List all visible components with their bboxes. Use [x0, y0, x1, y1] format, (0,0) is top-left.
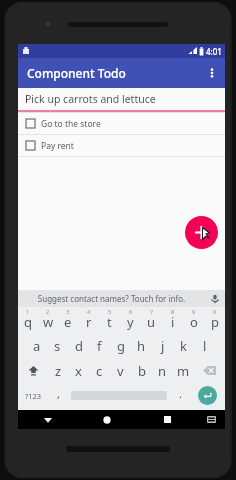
button[interactable]: 0	[204, 307, 225, 333]
button[interactable]: 7	[141, 307, 162, 333]
button[interactable]: 2	[38, 307, 58, 333]
staticText: k	[180, 337, 187, 355]
button[interactable]: Backspace	[194, 358, 225, 383]
button[interactable]: b	[131, 358, 152, 383]
staticText: x	[75, 362, 82, 380]
staticText: n	[158, 362, 167, 380]
button[interactable]: d	[68, 333, 89, 358]
staticText: w	[43, 313, 54, 331]
button[interactable]: Back	[18, 410, 77, 429]
staticText: Component Todo	[27, 65, 126, 81]
staticText: v	[117, 362, 124, 380]
staticText: 6	[129, 308, 133, 315]
button[interactable]: s	[47, 333, 68, 358]
staticText: j	[161, 337, 165, 355]
button[interactable]: Recents	[137, 410, 197, 429]
staticText: s	[54, 337, 61, 355]
button[interactable]: Switch keyboard	[197, 410, 225, 429]
button[interactable]: 8	[162, 307, 183, 333]
staticText: q	[24, 313, 32, 331]
button[interactable]: Pay rent	[18, 134, 225, 156]
staticText: r	[86, 313, 92, 331]
staticText: f	[97, 337, 102, 355]
button[interactable]: x	[68, 358, 89, 383]
button[interactable]: Voice input	[205, 290, 225, 307]
staticText: ?123	[25, 391, 42, 401]
button[interactable]: Space	[68, 383, 170, 408]
button[interactable]: Add todo	[185, 216, 218, 249]
staticText: b	[138, 362, 146, 380]
staticText: 2	[46, 308, 50, 315]
staticText: 9	[192, 308, 196, 315]
button[interactable]: a	[27, 333, 47, 358]
button[interactable]: Go to the store	[18, 112, 225, 134]
button[interactable]: Shift	[18, 358, 48, 383]
button[interactable]: k	[173, 333, 194, 358]
staticText: y	[127, 313, 134, 331]
button[interactable]: m	[173, 358, 194, 383]
staticText: 0	[213, 308, 217, 315]
staticText: e	[64, 313, 72, 331]
staticText: m	[177, 362, 190, 380]
button[interactable]: 9	[183, 307, 204, 333]
button[interactable]: More options	[199, 58, 225, 88]
staticText: .	[179, 386, 182, 401]
button[interactable]: Home	[77, 410, 137, 429]
staticText: d	[75, 337, 83, 355]
staticText: o	[190, 313, 198, 331]
button[interactable]: z	[48, 358, 68, 383]
button[interactable]: f	[89, 333, 110, 358]
staticText: 1	[26, 308, 30, 315]
staticText: u	[147, 313, 156, 331]
button[interactable]: ?123	[18, 383, 48, 408]
button[interactable]: 4	[78, 307, 99, 333]
button[interactable]: 1	[18, 307, 38, 333]
staticText: Pick up carrots and lettuce	[25, 92, 156, 106]
button[interactable]: c	[89, 358, 110, 383]
button[interactable]: 6	[120, 307, 141, 333]
staticText: c	[96, 362, 103, 380]
staticText: 5	[108, 308, 112, 315]
button[interactable]: h	[131, 333, 152, 358]
staticText: 7	[150, 308, 154, 315]
staticText: g	[117, 337, 125, 355]
staticText: l	[203, 337, 207, 355]
button[interactable]: ,	[48, 383, 68, 408]
staticText: h	[137, 337, 146, 355]
button[interactable]: Enter	[190, 383, 225, 408]
staticText: z	[55, 362, 62, 380]
staticText: Pay rent	[41, 140, 74, 152]
staticText: a	[33, 337, 41, 355]
button[interactable]: Suggest contact names? Touch for info.	[18, 293, 205, 304]
staticText: Go to the store	[41, 118, 101, 130]
staticText: 4	[87, 308, 91, 315]
button[interactable]: 3	[58, 307, 78, 333]
staticText: 3	[66, 308, 70, 315]
button[interactable]: v	[110, 358, 131, 383]
staticText: i	[171, 313, 175, 331]
staticText: 8	[171, 308, 175, 315]
button[interactable]: .	[170, 383, 190, 408]
button[interactable]: Pick up carrots and lettuce	[18, 88, 225, 112]
staticText: p	[211, 313, 219, 331]
button[interactable]: l	[194, 333, 215, 358]
button[interactable]: 5	[99, 307, 120, 333]
button[interactable]: j	[152, 333, 173, 358]
staticText: 4:01	[206, 46, 222, 57]
button[interactable]: g	[110, 333, 131, 358]
staticText: t	[107, 313, 112, 331]
staticText: ,	[57, 386, 60, 401]
button[interactable]: n	[152, 358, 173, 383]
